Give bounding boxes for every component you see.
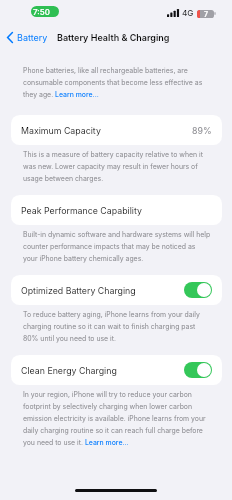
staticText: Peak Performance Capability: [21, 205, 142, 216]
staticText: Optimized Battery Charging: [21, 285, 136, 296]
staticText: Clean Energy Charging: [21, 365, 117, 376]
staticText: In your region, iPhone will try to reduc…: [23, 388, 211, 448]
button[interactable]: Clean Energy Charging: [11, 355, 222, 385]
staticText: Built-in dynamic software and hardware s…: [23, 228, 211, 264]
button[interactable]: Toggle setting: [184, 282, 212, 298]
staticText: Battery: [17, 32, 48, 43]
staticText: 89%: [192, 125, 212, 136]
button[interactable]: Optimized Battery Charging: [11, 275, 222, 305]
staticText: 7: [204, 10, 209, 18]
button[interactable]: Battery: [0, 29, 53, 46]
button[interactable]: Maximum Capacity: [11, 115, 222, 145]
button[interactable]: Learn more about clean energy charging: [85, 437, 123, 447]
staticText: Battery Health & Charging: [57, 32, 170, 43]
button[interactable]: Peak Performance Capability: [11, 195, 222, 225]
button[interactable]: Learn more about battery health: [55, 89, 93, 99]
staticText: To reduce battery aging, iPhone learns f…: [23, 308, 211, 344]
staticText: This is a measure of battery capacity re…: [23, 148, 211, 184]
staticText: 4G: [182, 8, 194, 18]
button[interactable]: Toggle setting: [184, 362, 212, 378]
staticText: 7:50: [33, 7, 50, 17]
staticText: Maximum Capacity: [21, 125, 101, 136]
staticText: Phone batteries, like all rechargeable b…: [23, 64, 211, 100]
